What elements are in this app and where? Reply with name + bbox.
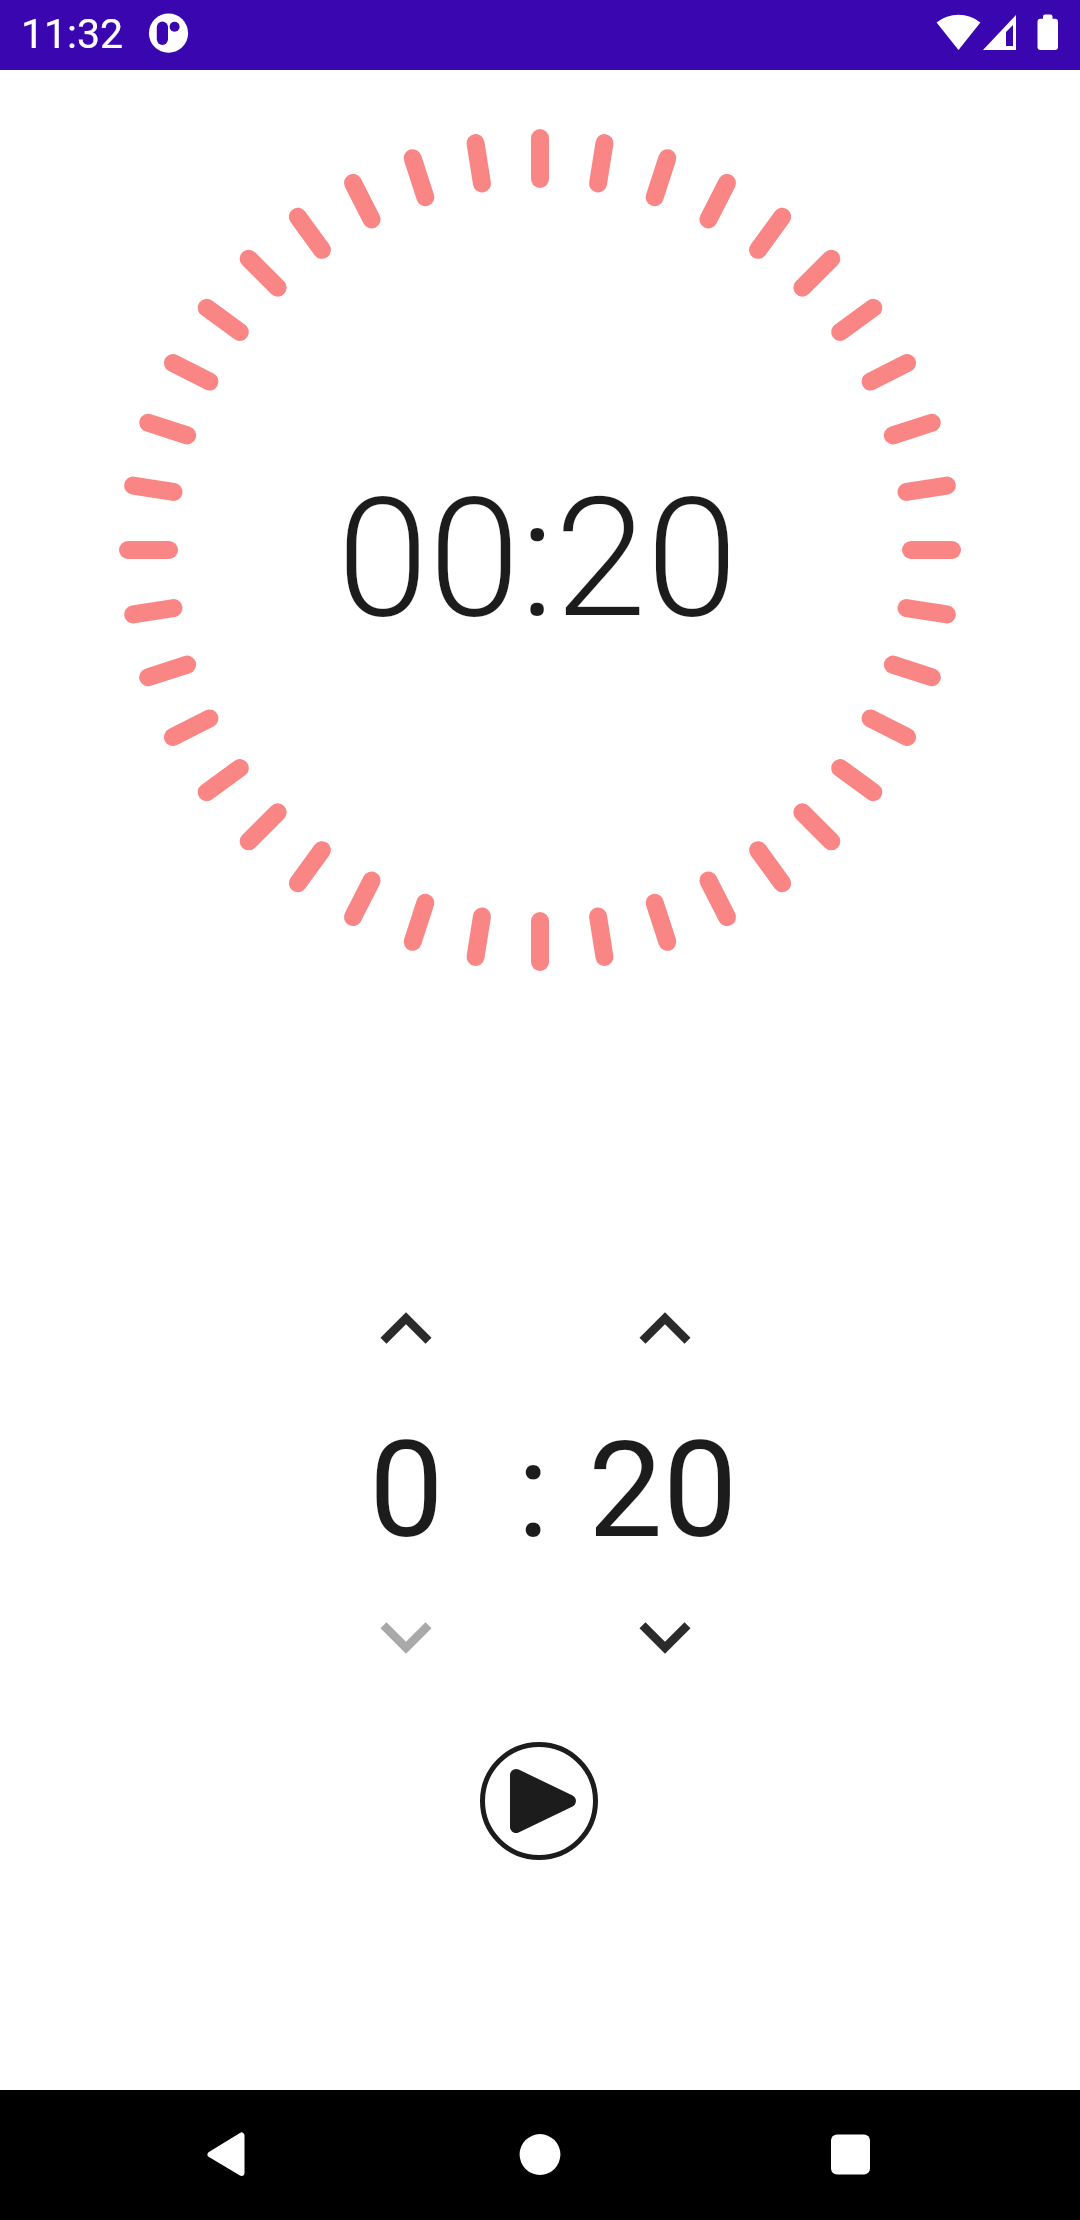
button[interactable]	[627, 1290, 703, 1366]
staticText: 11:32	[21, 10, 124, 58]
staticText: 20	[588, 1413, 738, 1569]
button[interactable]	[368, 1290, 444, 1366]
button[interactable]	[479, 1741, 599, 1861]
button[interactable]	[491, 2105, 589, 2203]
button[interactable]: 0	[306, 1391, 506, 1591]
button[interactable]	[802, 2105, 900, 2203]
staticText: :	[517, 1413, 550, 1569]
button[interactable]	[368, 1600, 444, 1676]
button[interactable]: 20	[563, 1391, 763, 1591]
staticText: 00:20	[337, 462, 738, 655]
staticText: 0	[369, 1413, 444, 1569]
button[interactable]	[627, 1600, 703, 1676]
button[interactable]	[179, 2106, 277, 2204]
